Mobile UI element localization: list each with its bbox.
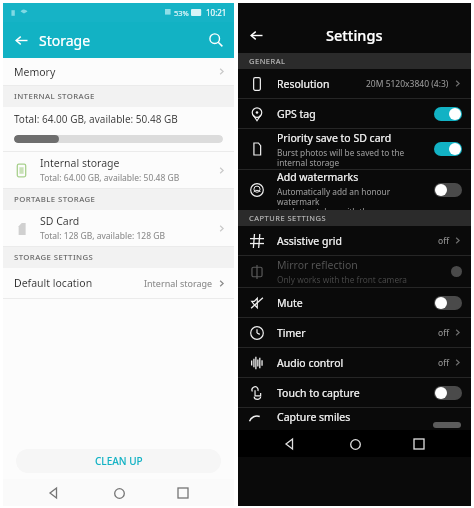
button[interactable]: Internal storage: [3, 152, 234, 188]
button[interactable]: Audio control: [238, 348, 471, 377]
staticText: GPS tag: [277, 107, 316, 121]
staticText: Internal storage: [40, 156, 120, 170]
staticText: Total: 64.00 GB, available: 50.48 GB: [14, 112, 178, 126]
button[interactable]: SD Card: [3, 210, 234, 246]
button[interactable]: Add watermarks: [238, 170, 471, 210]
staticText: Memory: [14, 65, 56, 79]
staticText: off: [438, 327, 449, 339]
button[interactable]: Resolution: [238, 69, 471, 98]
staticText: 20M 5120x3840 (4:3): [366, 78, 449, 90]
button[interactable]: Timer: [238, 318, 471, 347]
staticText: Mute: [277, 296, 303, 310]
button[interactable]: Recents: [406, 431, 432, 457]
button[interactable]: Home: [106, 480, 132, 506]
button[interactable]: Mirror reflection: [238, 256, 471, 287]
button[interactable]: Assistive grid: [238, 226, 471, 255]
staticText: 53%: [174, 8, 189, 18]
button[interactable]: CLEAN UP: [16, 449, 221, 473]
staticText: Only works with the front camera: [277, 274, 407, 285]
button[interactable]: GPS tag: [238, 99, 471, 128]
staticText: STORAGE SETTINGS: [14, 252, 94, 263]
button[interactable]: Mute: [238, 288, 471, 317]
staticText: Automatically add an honour watermark to…: [277, 186, 428, 210]
button[interactable]: Memory: [3, 58, 234, 85]
staticText: Total: 128 GB, available: 128 GB: [40, 230, 165, 242]
staticText: Settings: [326, 25, 383, 45]
staticText: Add watermarks: [277, 170, 359, 184]
staticText: Touch to capture: [277, 386, 360, 400]
staticText: Assistive grid: [277, 234, 342, 248]
staticText: off: [438, 357, 449, 369]
staticText: Capture smiles: [277, 410, 351, 424]
staticText: Priority save to SD card: [277, 131, 392, 145]
staticText: Burst photos will be saved to the intern…: [277, 147, 405, 168]
staticText: off: [438, 235, 449, 247]
button[interactable]: Back: [277, 431, 303, 457]
staticText: Timer: [277, 326, 306, 340]
staticText: INTERNAL STORAGE: [14, 91, 95, 102]
staticText: Mirror reflection: [277, 258, 358, 272]
button[interactable]: Back: [238, 17, 274, 53]
staticText: Resolution: [277, 77, 330, 91]
button[interactable]: Touch to capture: [238, 378, 471, 407]
staticText: SD Card: [40, 214, 80, 228]
button[interactable]: Search: [198, 22, 234, 58]
button[interactable]: Priority save to SD card: [238, 129, 471, 169]
button[interactable]: Back: [3, 22, 39, 58]
button[interactable]: Home: [342, 431, 368, 457]
button[interactable]: Back: [41, 480, 67, 506]
staticText: Storage: [39, 31, 91, 50]
button[interactable]: Default location: [3, 268, 234, 298]
staticText: CLEAN UP: [95, 454, 143, 468]
button[interactable]: Recents: [170, 480, 196, 506]
staticText: GENERAL: [249, 56, 286, 66]
staticText: PORTABLE STORAGE: [14, 194, 96, 205]
staticText: Total: 64.00 GB, available: 50.48 GB: [40, 172, 180, 184]
button[interactable]: Capture smiles: [238, 408, 471, 430]
staticText: Internal storage: [144, 277, 213, 289]
staticText: CAPTURE SETTINGS: [249, 213, 327, 223]
staticText: 10:21: [206, 7, 227, 18]
staticText: Audio control: [277, 356, 344, 370]
staticText: Default location: [14, 276, 93, 290]
